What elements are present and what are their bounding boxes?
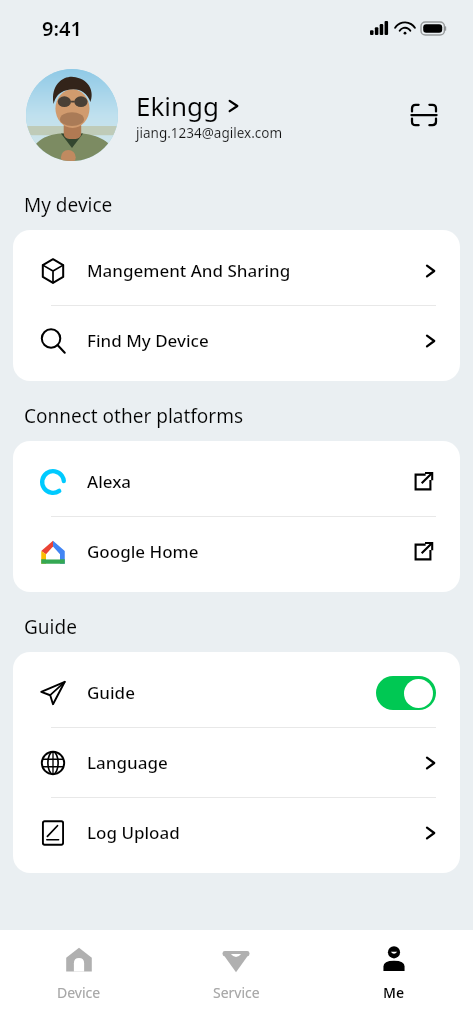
staticText: Device [57,983,101,1002]
staticText: Mangement And Sharing [87,259,425,282]
button[interactable]: Me [315,930,473,1024]
button[interactable]: Service [157,930,315,1024]
button[interactable]: Mangement And Sharing [13,236,460,305]
staticText: Guide [24,614,77,640]
staticText: 9:41 [42,15,82,42]
button[interactable]: Scan code [401,92,447,138]
staticText: My device [24,192,113,218]
staticText: jiang.1234@agilex.com [136,124,283,142]
button[interactable]: Language [13,728,460,797]
button[interactable]: Alexa [13,447,460,516]
button[interactable]: Device [0,930,157,1024]
button[interactable]: Ekingg [26,69,401,161]
button[interactable]: Find My Device [13,306,460,375]
button[interactable]: Open external link [410,539,436,565]
staticText: Find My Device [87,329,425,352]
staticText: Connect other platforms [24,403,244,429]
button[interactable]: Open external link [410,469,436,495]
button[interactable]: Guide toggle, on [376,676,436,710]
staticText: Guide [87,681,376,704]
button[interactable]: Google Home [13,517,460,586]
staticText: Alexa [87,470,410,493]
button[interactable]: Log Upload [13,798,460,867]
staticText: Language [87,751,425,774]
staticText: Service [213,983,260,1002]
staticText: Ekingg [136,88,220,123]
button[interactable]: Guide [13,658,460,727]
staticText: Log Upload [87,821,425,844]
staticText: Google Home [87,540,410,563]
staticText: Me [383,983,405,1002]
